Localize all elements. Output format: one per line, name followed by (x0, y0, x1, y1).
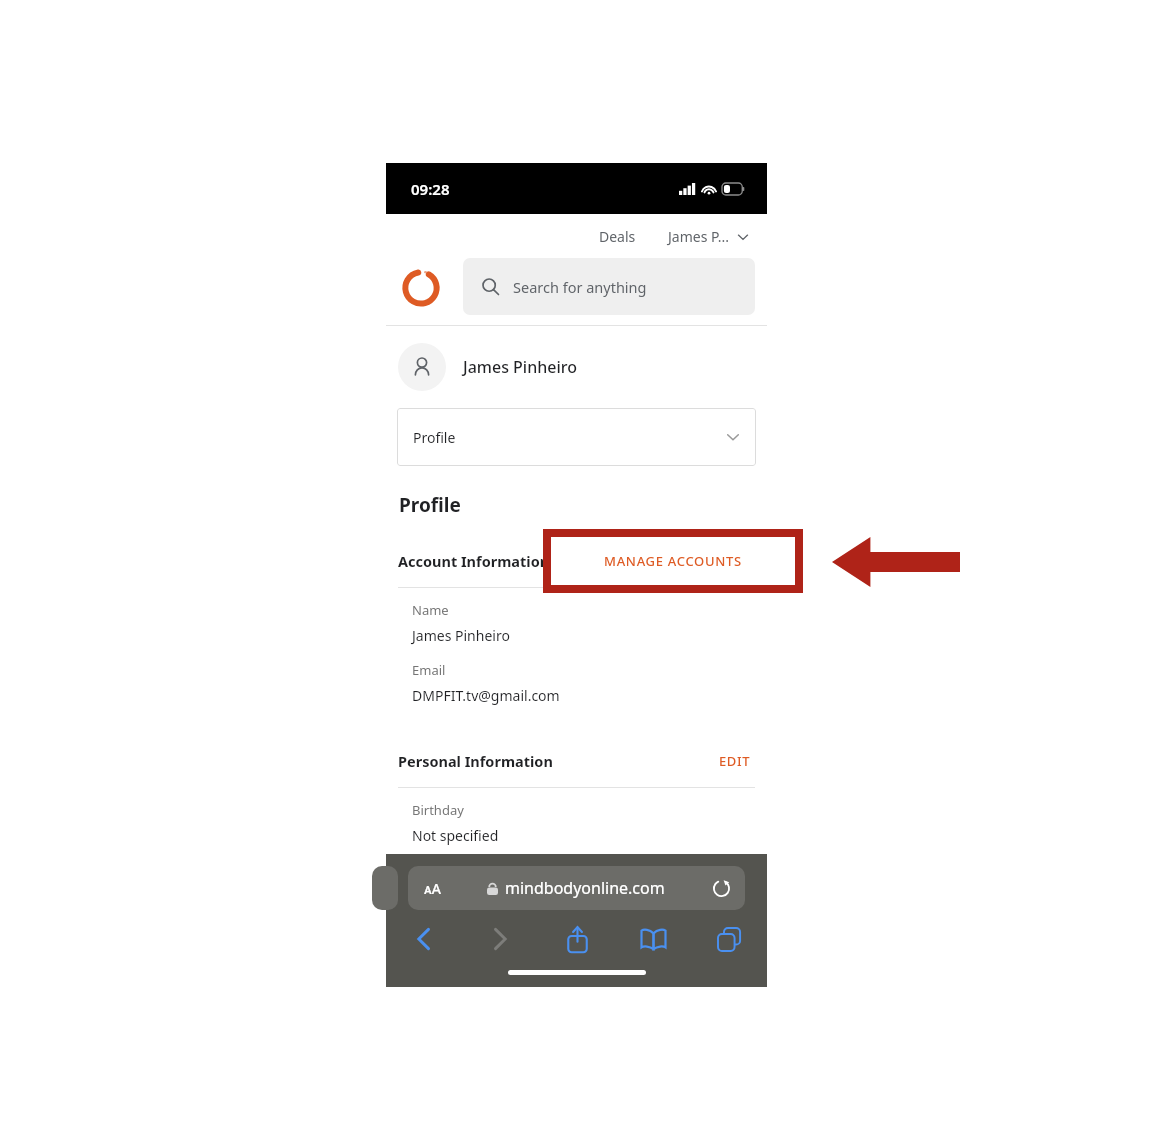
staticText: James Pinheiro (463, 356, 577, 378)
staticText: Birthday (412, 801, 464, 819)
staticText: mindbodyonline.com (505, 877, 665, 899)
staticText: EDIT (719, 752, 751, 770)
other: Arrow pointing to Manage Accounts (832, 537, 960, 587)
staticText: DMPFIT.tv@gmail.com (412, 686, 560, 705)
staticText: Profile (413, 428, 456, 447)
button[interactable]: MANAGE ACCOUNTS (551, 537, 795, 585)
staticText: Deals (599, 227, 636, 246)
button[interactable]: EDIT (715, 748, 755, 774)
button[interactable]: Tabs (709, 919, 749, 959)
button[interactable]: Reload (712, 879, 731, 898)
button[interactable]: Deals (593, 223, 642, 250)
button[interactable]: Bookmarks (633, 919, 673, 959)
button[interactable]: Back (404, 919, 444, 959)
button[interactable]: Share (557, 919, 597, 959)
staticText: James Pinheiro (412, 626, 510, 645)
button[interactable]: ᴀA (408, 866, 745, 910)
staticText: 09:28 (411, 179, 450, 199)
button[interactable]: Profile (397, 408, 756, 466)
button[interactable]: Forward (480, 919, 520, 959)
button[interactable]: Search for anything (463, 258, 755, 315)
staticText: Search for anything (513, 277, 647, 297)
staticText: Email (412, 661, 446, 679)
staticText: MANAGE ACCOUNTS (604, 552, 742, 570)
staticText: Account Information (398, 551, 550, 571)
staticText: James P... (668, 227, 729, 246)
staticText: Not specified (412, 826, 499, 845)
staticText: Profile (399, 492, 461, 518)
staticText: Personal Information (398, 751, 553, 771)
staticText: Name (412, 601, 449, 619)
button[interactable]: James P... (664, 223, 753, 250)
staticText: ᴀA (424, 879, 441, 898)
button[interactable]: James Pinheiro (398, 343, 767, 391)
button[interactable]: Mindbody home (398, 264, 444, 310)
